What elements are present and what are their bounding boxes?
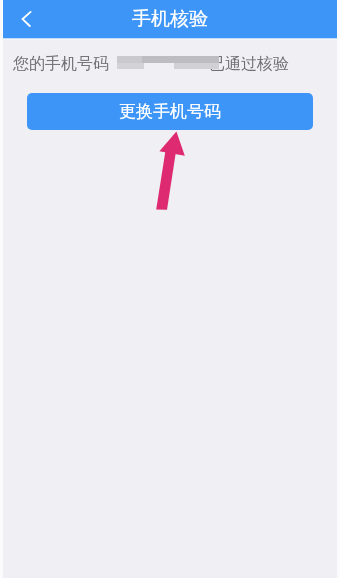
button[interactable]: Back — [3, 0, 47, 38]
staticText: 更换手机号码 — [119, 101, 221, 122]
staticText: 手机核验 — [132, 7, 208, 31]
staticText: 已通过核验 — [209, 54, 289, 74]
button[interactable]: 更换手机号码 — [27, 93, 313, 130]
staticText: 您的手机号码 — [13, 54, 109, 74]
